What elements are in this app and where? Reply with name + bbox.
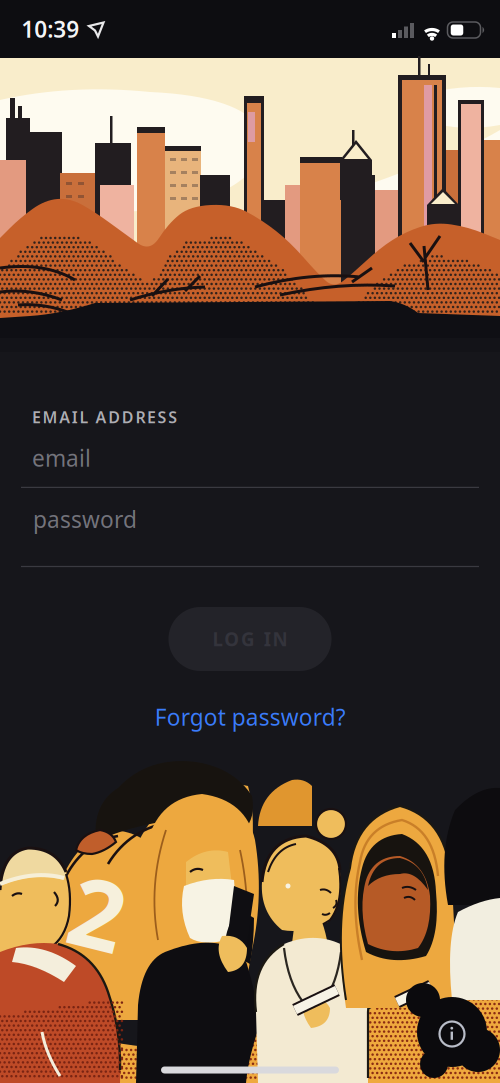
staticText: A [96,406,107,428]
staticText: D [122,406,134,428]
staticText: L [79,406,88,428]
staticText: email [32,443,91,473]
button[interactable]: L [168,607,331,671]
button[interactable]: password [21,489,479,567]
staticText: E [32,406,41,428]
staticText: O [224,627,239,651]
button[interactable]: Info [435,1017,469,1051]
staticText: D [108,406,120,428]
staticText: I [72,406,78,428]
staticText: G [241,627,255,651]
staticText: 2 [70,848,125,976]
staticText: L [212,627,222,651]
button[interactable]: email [21,431,479,488]
staticText: E [147,406,156,428]
staticText: 10:39 [21,14,79,44]
staticText: R [135,406,145,428]
staticText: Forgot password? [154,702,345,732]
button[interactable]: Forgot password? [100,702,400,732]
staticText: password [33,504,137,534]
staticText: M [43,406,58,428]
staticText: N [272,627,287,651]
staticText: A [59,406,70,428]
staticText: I [264,627,271,651]
staticText: S [168,406,177,428]
staticText: S [158,406,167,428]
